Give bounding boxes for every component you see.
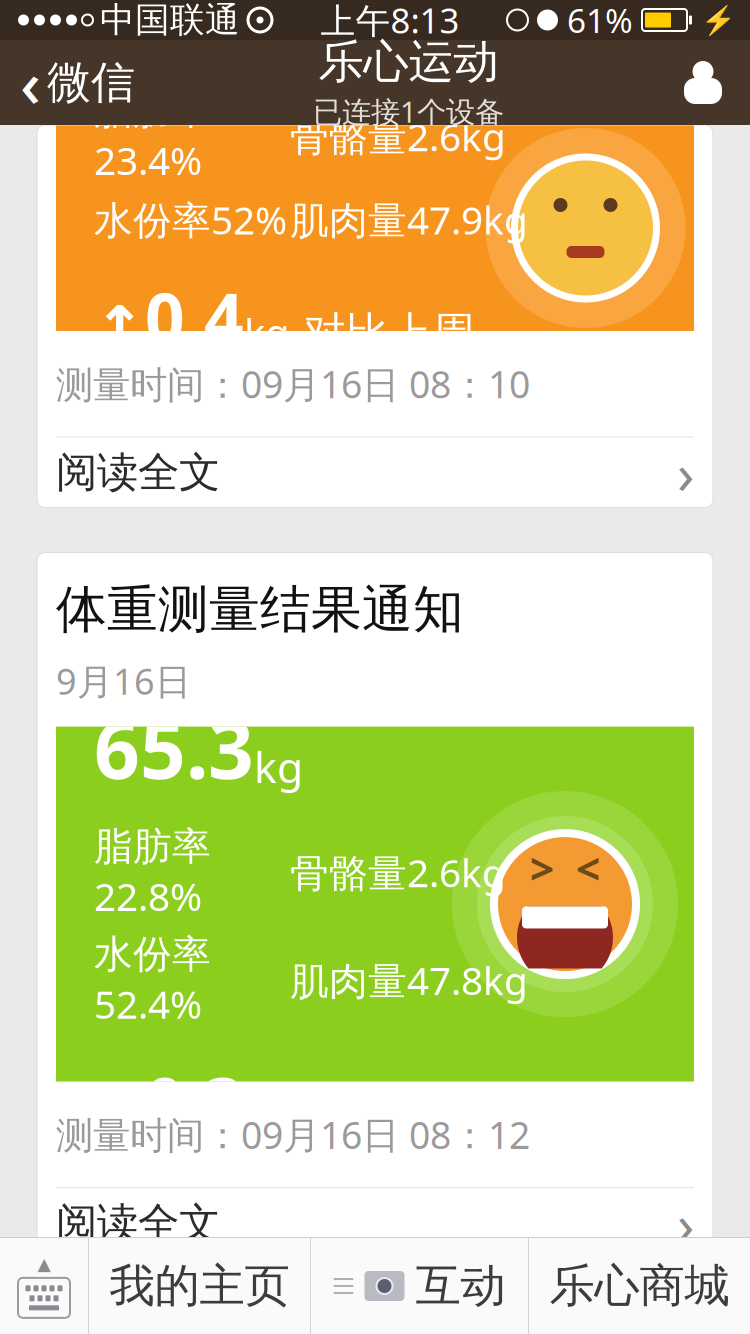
staticText: 微信 [47,55,135,109]
staticText: kg [244,1090,290,1144]
staticText: kg [254,738,303,795]
staticText: > [530,840,554,896]
staticText: 肌肉量47.8kg [290,954,528,1006]
staticText: 水份率52.4% [94,931,211,1029]
staticText: 脂肪率22.8% [94,823,211,922]
staticText: 阅读全文 [56,1198,220,1249]
staticText: 肌肉量47.9kg [290,194,528,245]
staticText: kg [244,306,290,359]
button[interactable]: 互动 [311,1238,528,1334]
staticText: 对比上周 [290,1091,475,1144]
button[interactable]: 阅读全文 [37,1188,713,1258]
staticText: 体重测量结果通知 [56,579,464,641]
staticText: 0.3 [145,1055,244,1148]
button[interactable]: 乐心商城 [529,1238,750,1334]
button[interactable]: 我的主页 [89,1238,310,1334]
staticText: 我的主页 [109,1258,289,1314]
staticText: 0.4 [145,271,244,363]
staticText: ↑ [94,293,145,363]
staticText: 阅读全文 [56,447,220,498]
staticText: 上午8:13 [320,0,459,43]
staticText: 骨骼量2.6kg [290,847,506,898]
staticText: › [677,1186,694,1260]
staticText: 脂肪率23.4% [94,87,211,186]
staticText: ↓ [94,1078,145,1148]
button[interactable]: ‹ [0,26,135,139]
staticText: 测量时间：09月16日 08：10 [56,359,530,409]
staticText: 乐心商城 [549,1258,729,1314]
staticText: < [576,840,600,896]
staticText: 测量时间：09月16日 08：12 [56,1110,530,1159]
button[interactable]: 阅读全文 [37,438,713,508]
staticText: 互动 [415,1258,505,1314]
staticText: ‹ [20,40,41,125]
staticText: 65.3 [94,695,254,801]
staticText: 中国联通 [100,0,240,41]
staticText: 对比上周 [290,307,475,359]
staticText: 61% [567,0,633,42]
staticText: ⚡ [701,4,736,36]
staticText: 9月16日 [56,657,191,705]
staticText: 已连接1个设备 [313,92,504,131]
staticText: ▲ [37,1254,50,1274]
staticText: 骨骼量2.6kg [290,111,506,162]
button[interactable]: 键盘 [0,1238,88,1334]
staticText: 乐心运动 [318,34,498,90]
button[interactable]: 个人中心 [682,45,750,119]
staticText: › [677,435,694,510]
staticText: 水份率52% [94,194,287,245]
